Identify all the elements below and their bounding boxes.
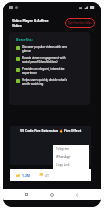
staticText: WhatsApp — [56, 155, 71, 159]
staticText: 1.2M — [22, 173, 31, 178]
button[interactable]: Telegram — [53, 145, 89, 153]
staticText: Buy Premium Video — [68, 21, 92, 25]
staticText: Benefits: — [16, 37, 33, 42]
button[interactable]: VS Code Fire Extension 🔥 Fire Effect — [10, 126, 91, 165]
button[interactable]: Buy Premium Video — [65, 18, 95, 28]
staticText: Boosts viewer engagement with social pro… — [22, 56, 68, 64]
button[interactable]: Home — [50, 193, 54, 197]
button[interactable]: Copy Link — [53, 161, 89, 169]
staticText: Copy Link — [56, 163, 70, 167]
button[interactable]: Back — [75, 193, 79, 197]
staticText: Video Player & Adfree Video — [12, 18, 65, 28]
button[interactable]: Recents — [25, 193, 28, 196]
staticText: Telegram — [56, 147, 70, 151]
button[interactable]: WhatsApp — [53, 153, 89, 161]
staticText: Provides an elegant, interactive experie… — [22, 67, 68, 75]
staticText: 41 — [45, 173, 49, 178]
staticText: Discover popular videos with one glance — [22, 45, 68, 53]
staticText: VS Code Fire Extension 🔥 Fire Effect — [20, 128, 82, 133]
staticText: Helps users quickly decide what's worth … — [22, 78, 68, 86]
